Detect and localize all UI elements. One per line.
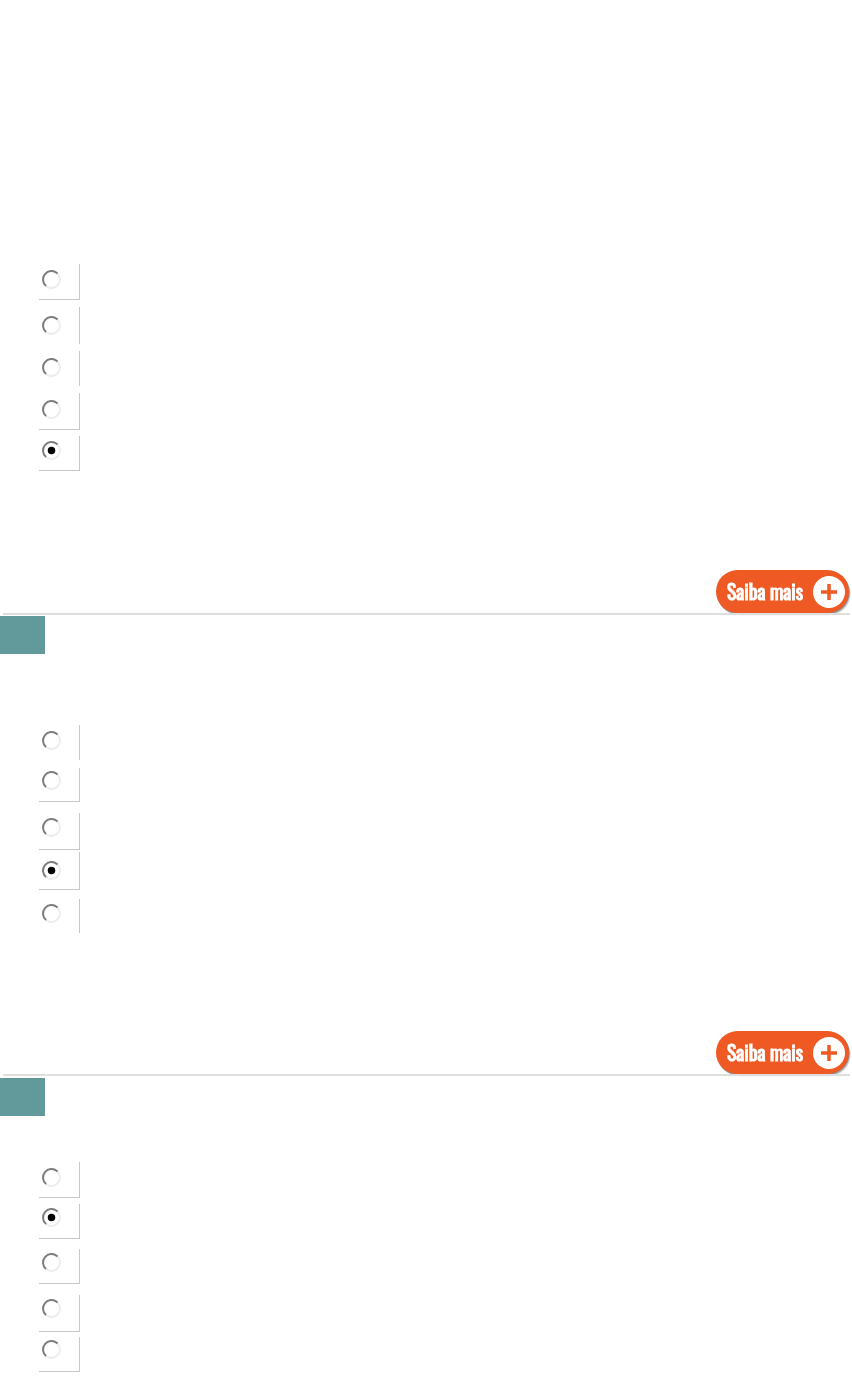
toggle[interactable]: Option 2 — [0, 307, 80, 344]
toggle[interactable]: Option 3 — [0, 351, 80, 386]
toggle[interactable]: Option 4 — [0, 393, 80, 429]
toggle[interactable]: Option 4 — [0, 852, 80, 889]
toggle[interactable]: Option 4 — [0, 1295, 80, 1331]
toggle[interactable]: Option 1 — [0, 1162, 80, 1197]
staticText: Saiba mais — [727, 1038, 804, 1067]
toggle[interactable]: Option 3 — [0, 813, 80, 849]
toggle[interactable]: Option 5 — [0, 899, 80, 933]
button[interactable]: Saiba mais — [716, 570, 849, 613]
staticText: Saiba mais — [727, 577, 804, 606]
button[interactable]: Saiba mais — [716, 1031, 849, 1074]
toggle[interactable]: Option 5 — [0, 436, 80, 470]
toggle[interactable]: Option 1 — [0, 725, 80, 760]
toggle[interactable]: Option 2 — [0, 768, 80, 801]
toggle[interactable]: Option 3 — [0, 1249, 80, 1283]
toggle[interactable]: Option 1 — [0, 264, 80, 299]
toggle[interactable]: Option 5 — [0, 1337, 80, 1371]
toggle[interactable]: Option 2 — [0, 1204, 80, 1238]
